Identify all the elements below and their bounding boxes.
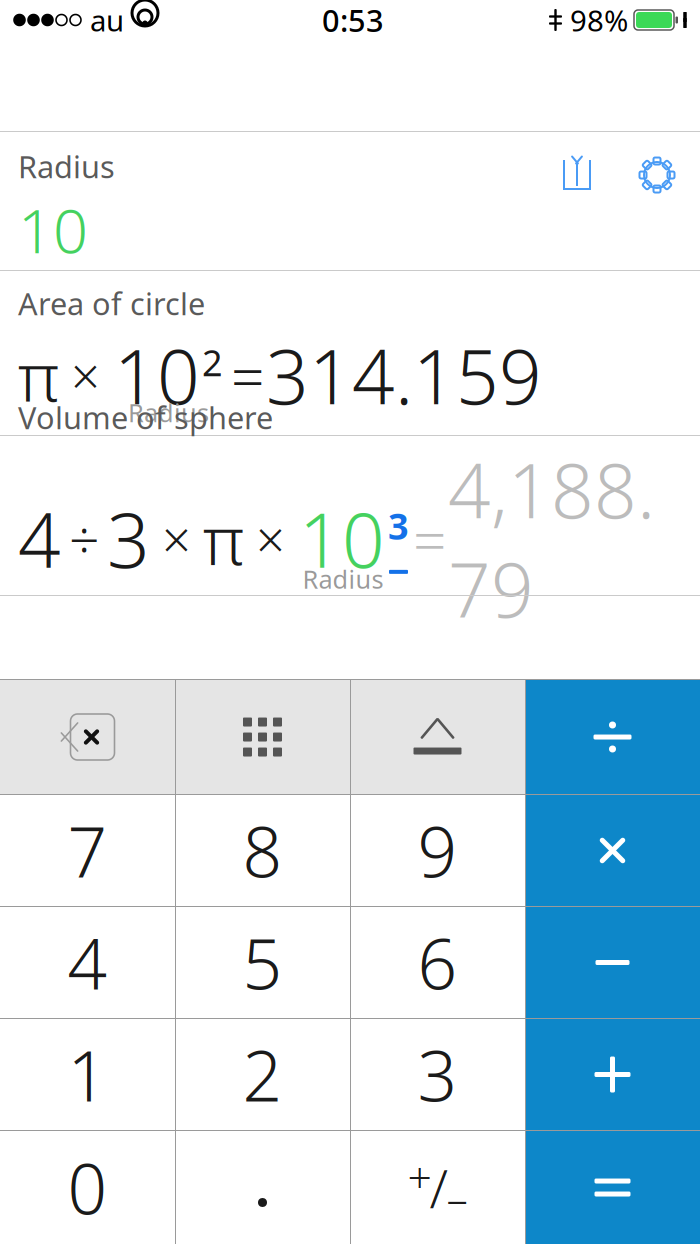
staticText: 2 <box>242 1028 282 1121</box>
staticText: 3 <box>417 1028 457 1121</box>
button[interactable]: Delete <box>0 680 175 794</box>
staticText: ÷ <box>69 503 99 574</box>
staticText: π <box>18 331 59 419</box>
button[interactable]: Divide <box>525 680 700 794</box>
staticText: 4,188.79 <box>448 440 655 638</box>
button[interactable]: Plus or minus <box>350 1131 525 1244</box>
staticText: – <box>446 1169 467 1226</box>
button[interactable]: Share <box>548 146 606 204</box>
staticText: Radius <box>302 562 383 596</box>
button[interactable]: 3 <box>350 1019 525 1130</box>
staticText: 3 <box>107 489 150 588</box>
button[interactable]: 0 <box>0 1131 175 1244</box>
button[interactable]: Minus <box>525 907 700 1018</box>
staticText: 10 <box>114 326 200 425</box>
staticText: 3 <box>388 502 409 550</box>
staticText: × <box>71 342 100 409</box>
staticText: × <box>162 505 191 572</box>
staticText: π <box>203 495 244 583</box>
staticText: 5 <box>242 916 282 1009</box>
button[interactable]: 1 <box>0 1019 175 1130</box>
button[interactable]: Decimal point <box>175 1131 350 1244</box>
staticText: 7 <box>67 804 107 897</box>
staticText: 1 <box>67 1028 107 1121</box>
staticText: 10 <box>18 189 88 270</box>
button[interactable]: Exponent <box>350 680 525 794</box>
button[interactable]: 8 <box>175 795 350 906</box>
button[interactable]: 5 <box>175 907 350 1018</box>
staticText: 10 <box>299 489 385 588</box>
staticText: Area of circle <box>18 283 205 324</box>
button[interactable]: Plus <box>525 1019 700 1130</box>
button[interactable]: 2 <box>175 1019 350 1130</box>
button[interactable]: 6 <box>350 907 525 1018</box>
staticText: = <box>413 500 446 578</box>
staticText: × <box>256 505 285 572</box>
button[interactable]: Keypad layout <box>175 680 350 794</box>
staticText: 8 <box>242 804 282 897</box>
staticText: 9 <box>417 804 457 897</box>
staticText: 4 <box>67 916 107 1009</box>
staticText: 0 <box>67 1141 107 1234</box>
staticText: 6 <box>417 916 457 1009</box>
button[interactable]: Equals <box>525 1131 700 1244</box>
staticText: 98% <box>570 0 628 39</box>
staticText: Radius <box>18 146 115 187</box>
staticText: 314.159 <box>266 326 542 425</box>
staticText: = <box>231 336 264 414</box>
staticText: / <box>429 1152 448 1223</box>
staticText: + <box>407 1148 431 1205</box>
staticText: Radius <box>128 395 209 429</box>
button[interactable]: Settings <box>628 146 686 204</box>
staticText: Volume of sphere <box>18 397 273 438</box>
staticText: 2 <box>202 338 223 386</box>
button[interactable]: 4 <box>0 907 175 1018</box>
staticText: au <box>90 0 124 39</box>
button[interactable]: Multiply <box>525 795 700 906</box>
button[interactable]: 7 <box>0 795 175 906</box>
button[interactable]: 9 <box>350 795 525 906</box>
staticText: 0:53 <box>322 0 384 40</box>
staticText: 4 <box>18 489 61 588</box>
